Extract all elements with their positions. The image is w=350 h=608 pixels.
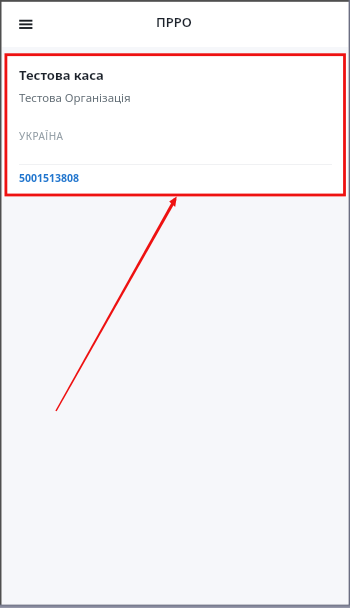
button[interactable]: Тестова каса bbox=[3, 55, 347, 197]
staticText: УКРАЇНА bbox=[19, 129, 64, 143]
staticText: Тестова каса bbox=[19, 66, 104, 84]
staticText: ПРРО bbox=[156, 13, 192, 31]
button[interactable]: Open navigation menu bbox=[11, 10, 41, 40]
staticText: 5001513808 bbox=[19, 171, 80, 185]
staticText: Тестова Організація bbox=[19, 90, 131, 106]
